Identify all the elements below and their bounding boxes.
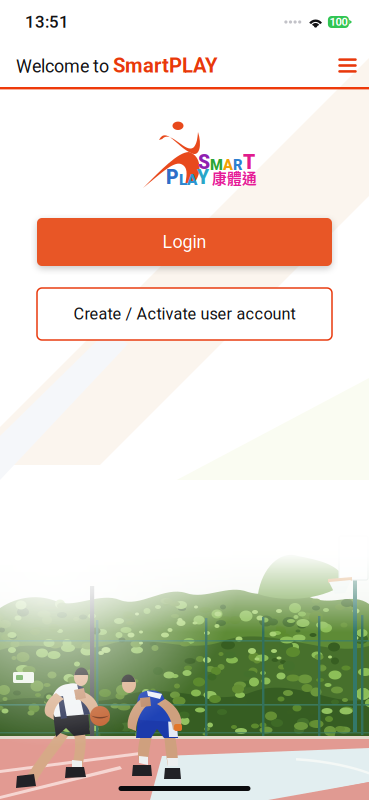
staticText: A	[187, 171, 197, 189]
button[interactable]: Menu	[326, 44, 369, 87]
staticText: Login	[162, 231, 206, 252]
staticText: Y	[197, 166, 209, 189]
staticText: SmartPLAY	[113, 54, 218, 77]
staticText: T	[243, 151, 255, 174]
staticText: L	[179, 171, 187, 189]
staticText: M	[210, 156, 223, 174]
button[interactable]: Login	[37, 218, 332, 266]
staticText: R	[233, 156, 243, 174]
staticText: 13:51	[25, 12, 69, 32]
staticText: 康體通	[212, 167, 257, 188]
staticText: Create / Activate user account	[73, 304, 295, 324]
staticText: A	[223, 156, 233, 174]
staticText: 100	[329, 15, 347, 28]
staticText: S	[198, 151, 210, 174]
button[interactable]: Create / Activate user account	[37, 288, 332, 340]
staticText: P	[166, 166, 179, 189]
staticText: Welcome to	[16, 56, 113, 77]
